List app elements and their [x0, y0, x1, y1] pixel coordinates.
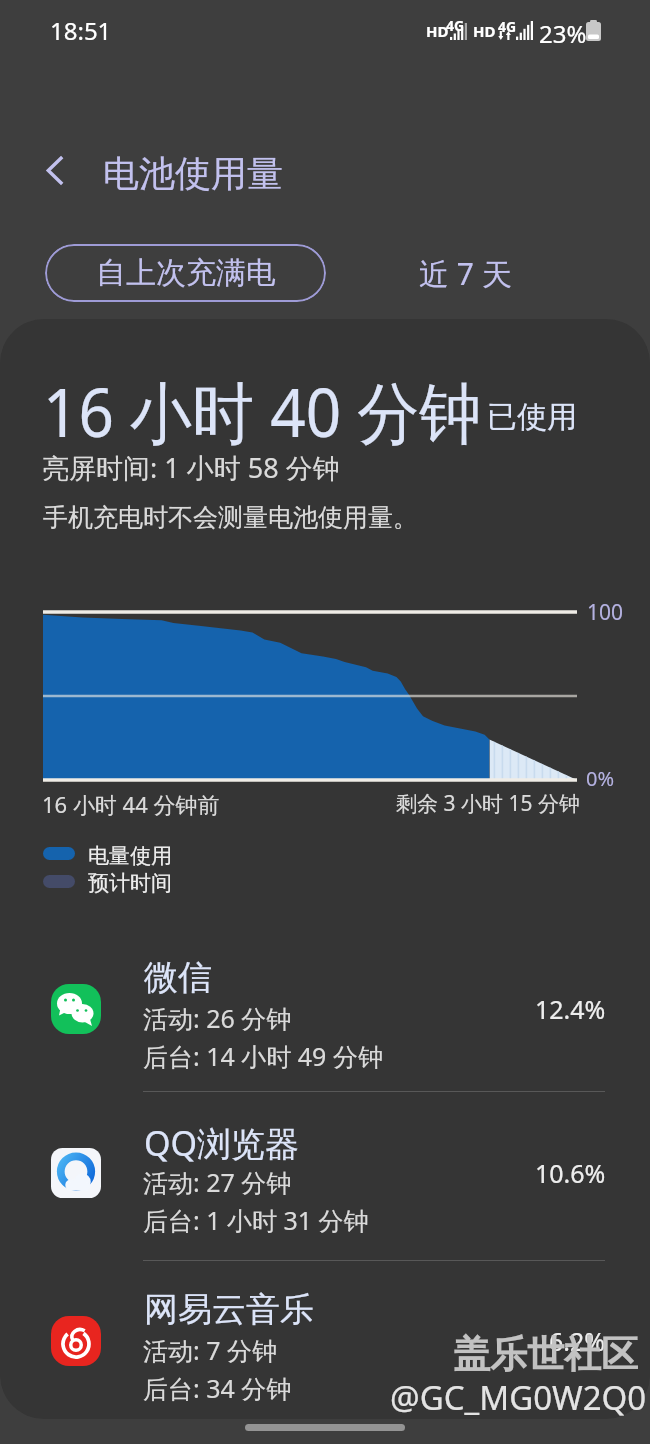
staticText: 剩余 3 小时 15 分钟	[396, 789, 580, 818]
staticText: 100	[587, 598, 624, 627]
staticText: 16 小时 40 分钟	[43, 366, 482, 457]
staticText: 微信	[144, 956, 212, 999]
staticText: 活动: 7 分钟	[143, 1333, 278, 1367]
staticText: 0%	[586, 765, 615, 792]
staticText: 已使用	[487, 398, 577, 436]
staticText: 盖乐世社区	[453, 1331, 638, 1378]
staticText: 6.2%	[549, 1324, 606, 1358]
staticText: 4G	[446, 16, 465, 35]
staticText: 后台: 1 小时 31 分钟	[143, 1203, 369, 1237]
staticText: 手机充电时不会测量电池使用量。	[43, 502, 418, 533]
staticText: 10.6%	[535, 1156, 606, 1190]
staticText: HD	[473, 21, 496, 41]
button[interactable]: 返回	[28, 143, 82, 197]
button[interactable]	[0, 1259, 650, 1419]
button[interactable]: 自上次充满电	[45, 244, 326, 302]
staticText: 23%	[539, 17, 587, 50]
staticText: 亮屏时间: 1 小时 58 分钟	[42, 449, 340, 486]
button[interactable]: 近 7 天	[400, 244, 530, 302]
staticText: HD	[426, 21, 449, 41]
staticText: QQ浏览器	[144, 1120, 300, 1166]
staticText: 预计时间	[88, 870, 172, 896]
staticText: 4G	[498, 17, 517, 36]
staticText: 后台: 14 小时 49 分钟	[143, 1039, 383, 1073]
staticText: 12.4%	[535, 992, 606, 1026]
staticText: 活动: 27 分钟	[143, 1165, 292, 1199]
staticText: 16 小时 44 分钟前	[42, 789, 220, 819]
staticText: 电池使用量	[103, 151, 283, 196]
staticText: 网易云音乐	[144, 1288, 314, 1331]
staticText: 自上次充满电	[96, 254, 276, 292]
staticText: @GC_MG0W2Q0	[390, 1375, 647, 1420]
button[interactable]	[0, 1091, 650, 1259]
staticText: 18:51	[50, 14, 112, 47]
staticText: 后台: 34 分钟	[143, 1371, 292, 1405]
staticText: 电量使用	[88, 843, 172, 869]
staticText: 近 7 天	[419, 253, 512, 294]
staticText: 活动: 26 分钟	[143, 1001, 292, 1035]
button[interactable]	[0, 927, 650, 1095]
